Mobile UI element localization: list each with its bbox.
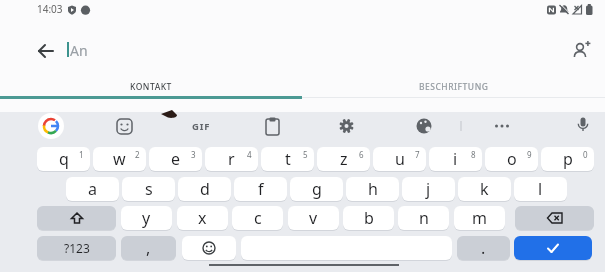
staticText: GIF	[192, 120, 211, 133]
button[interactable]: q	[37, 147, 90, 171]
button[interactable]: GIF	[188, 119, 214, 134]
staticText: 0	[583, 149, 588, 160]
staticText: 14:03	[37, 2, 63, 16]
staticText: 3	[191, 149, 196, 160]
staticText: ,	[146, 237, 151, 259]
staticText: 2	[135, 149, 140, 160]
button[interactable]: n	[398, 206, 449, 230]
button[interactable]: ,	[121, 236, 176, 260]
staticText: u	[395, 148, 405, 170]
staticText: 9	[527, 149, 532, 160]
staticText: 6	[359, 149, 364, 160]
staticText: t	[285, 148, 291, 170]
staticText: m	[472, 207, 487, 229]
staticText: k	[480, 178, 489, 200]
button[interactable]: c	[232, 206, 283, 230]
staticText: r	[228, 148, 235, 170]
staticText: c	[254, 207, 262, 229]
button[interactable]: r	[205, 147, 258, 171]
button[interactable]: b	[343, 206, 394, 230]
staticText: o	[507, 148, 517, 170]
button[interactable]: d	[178, 177, 231, 201]
button[interactable]: i	[429, 147, 482, 171]
button[interactable]	[515, 206, 594, 230]
button[interactable]: ?123	[37, 236, 116, 260]
staticText: s	[145, 178, 153, 200]
staticText: 1	[79, 149, 84, 160]
staticText: g	[312, 178, 322, 200]
staticText: v	[309, 207, 318, 229]
button[interactable]: BESCHRIFTUNG	[302, 76, 605, 97]
button[interactable]: l	[514, 177, 567, 201]
button[interactable]	[514, 236, 592, 260]
staticText: .	[481, 237, 486, 259]
staticText: b	[364, 207, 374, 229]
button[interactable]: o	[485, 147, 538, 171]
button[interactable]: a	[66, 177, 119, 201]
staticText: y	[142, 207, 151, 229]
button[interactable]: j	[402, 177, 455, 201]
button[interactable]: KONTAKT	[0, 76, 302, 97]
staticText: 8	[471, 149, 476, 160]
staticText: i	[453, 148, 458, 170]
button[interactable]: w	[93, 147, 146, 171]
staticText: w	[113, 148, 126, 170]
button[interactable]: An	[70, 40, 130, 60]
button[interactable]: .	[457, 236, 510, 260]
staticText: 5	[303, 149, 308, 160]
staticText: d	[200, 178, 210, 200]
button[interactable]: t	[261, 147, 314, 171]
button[interactable]	[570, 38, 596, 62]
staticText: q	[59, 148, 69, 170]
staticText: a	[88, 178, 97, 200]
button[interactable]	[32, 37, 60, 65]
button[interactable]: s	[122, 177, 175, 201]
staticText: 4	[247, 149, 252, 160]
button[interactable]: h	[346, 177, 399, 201]
button[interactable]: k	[458, 177, 511, 201]
staticText: h	[368, 178, 378, 200]
staticText: 7	[415, 149, 420, 160]
staticText: l	[538, 178, 543, 200]
staticText: p	[563, 148, 573, 170]
staticText: e	[171, 148, 181, 170]
button[interactable]: u	[373, 147, 426, 171]
staticText: j	[426, 178, 431, 200]
button[interactable]: v	[288, 206, 339, 230]
staticText: BESCHRIFTUNG	[419, 81, 489, 93]
staticText: ?123	[64, 240, 90, 256]
staticText: f	[258, 178, 264, 200]
staticText: x	[198, 207, 207, 229]
button[interactable]: p	[541, 147, 594, 171]
button[interactable]: f	[234, 177, 287, 201]
button[interactable]: x	[177, 206, 228, 230]
button[interactable]: e	[149, 147, 202, 171]
staticText: n	[419, 207, 429, 229]
staticText: An	[70, 41, 88, 60]
button[interactable]: m	[454, 206, 505, 230]
button[interactable]: z	[317, 147, 370, 171]
button[interactable]	[38, 113, 64, 139]
staticText: KONTAKT	[130, 81, 172, 93]
button[interactable]: g	[290, 177, 343, 201]
staticText: z	[340, 148, 348, 170]
button[interactable]	[182, 236, 236, 260]
button[interactable]: y	[121, 206, 172, 230]
button[interactable]	[37, 206, 116, 230]
